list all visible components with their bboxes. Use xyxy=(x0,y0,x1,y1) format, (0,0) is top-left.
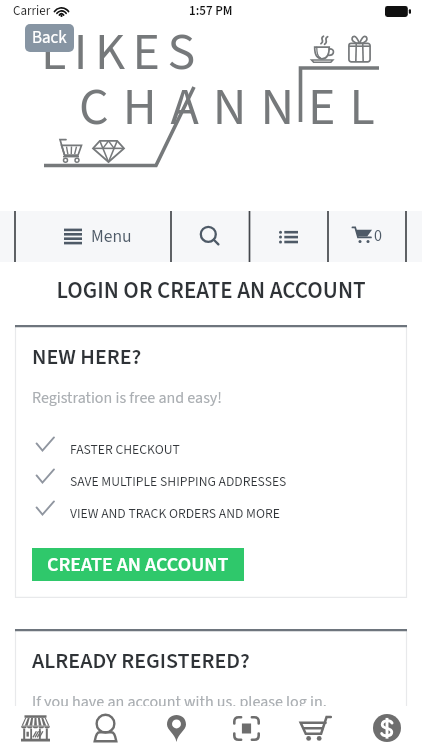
staticText: 0 xyxy=(374,225,382,248)
staticText: Back xyxy=(32,26,67,50)
button[interactable]: Locations xyxy=(141,706,211,750)
button[interactable]: Search xyxy=(171,211,249,262)
button[interactable]: Store xyxy=(0,706,70,750)
staticText: ALREADY REGISTERED? xyxy=(32,645,250,676)
staticText: CREATE AN ACCOUNT xyxy=(47,551,229,579)
button[interactable]: Menu xyxy=(15,211,171,262)
staticText: NEW HERE? xyxy=(32,341,142,372)
staticText: SAVE MULTIPLE SHIPPING ADDRESSES xyxy=(70,472,287,491)
staticText: If you have an account with us, please l… xyxy=(32,691,327,714)
button[interactable]: Back xyxy=(25,24,74,52)
staticText: LIKES xyxy=(41,16,203,90)
button[interactable]: FASTER CHECKOUT xyxy=(36,433,366,455)
button[interactable]: CREATE AN ACCOUNT xyxy=(32,548,244,581)
button[interactable]: Cart xyxy=(281,706,351,750)
staticText: Registration is free and easy! xyxy=(32,387,222,410)
staticText: FASTER CHECKOUT xyxy=(70,440,180,459)
button[interactable]: Account xyxy=(70,706,140,750)
staticText: LOGIN OR CREATE AN ACCOUNT xyxy=(0,274,422,307)
button[interactable]: VIEW AND TRACK ORDERS AND MORE xyxy=(36,497,366,519)
staticText: CHANNEL xyxy=(79,71,389,145)
button[interactable]: Categories xyxy=(249,211,328,262)
button[interactable]: Scan xyxy=(211,706,281,750)
staticText: Menu xyxy=(91,224,132,249)
button[interactable]: Deals xyxy=(352,706,422,750)
staticText: VIEW AND TRACK ORDERS AND MORE xyxy=(70,504,280,523)
staticText: Carrier xyxy=(13,2,51,21)
button[interactable]: 0 xyxy=(328,211,406,262)
staticText: 1:57 PM xyxy=(189,2,233,21)
button[interactable]: SAVE MULTIPLE SHIPPING ADDRESSES xyxy=(36,465,366,487)
